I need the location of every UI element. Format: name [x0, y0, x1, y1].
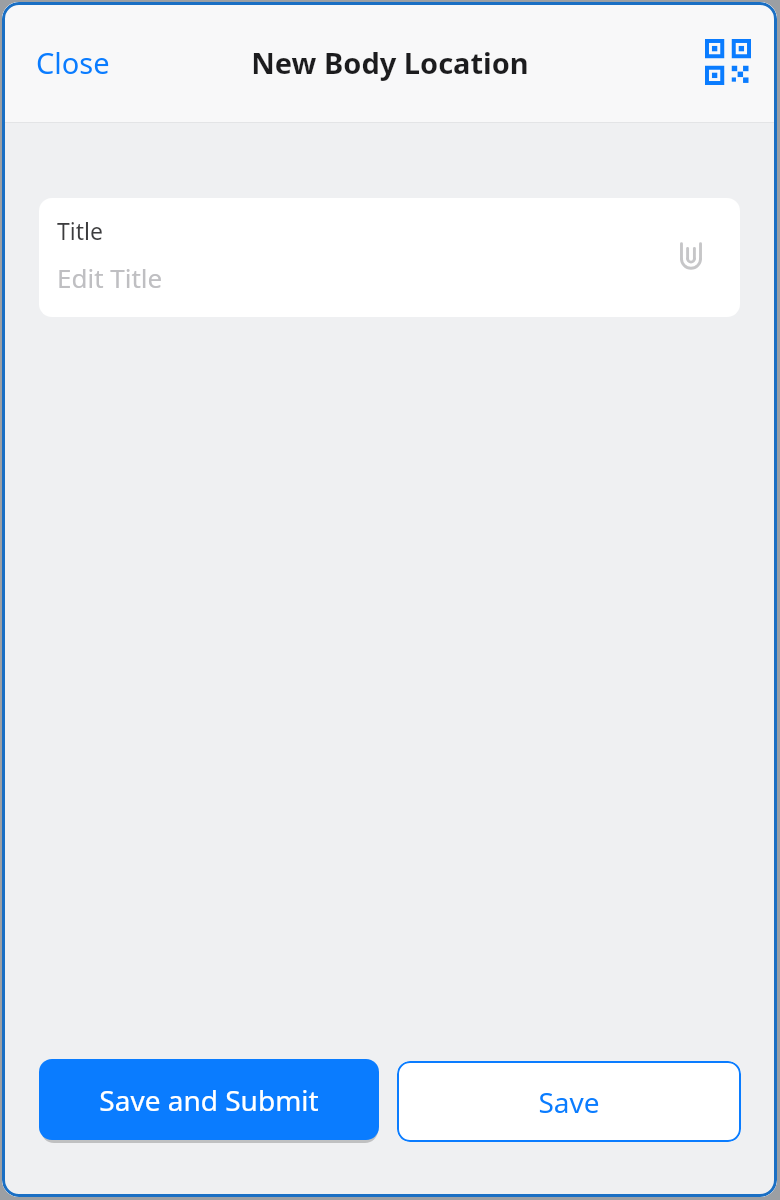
staticText: Title [57, 215, 103, 246]
staticText: Save and Submit [99, 1081, 319, 1119]
button[interactable]: Attach file [666, 233, 716, 283]
button[interactable]: Close [22, 33, 124, 92]
staticText: Save [538, 1083, 600, 1121]
button[interactable]: Save and Submit [39, 1059, 379, 1140]
staticText: Edit Title [57, 260, 163, 295]
button[interactable]: Title [39, 198, 740, 317]
button[interactable]: Scan QR code [701, 35, 755, 89]
staticText: New Body Location [251, 43, 529, 82]
button[interactable]: Save [397, 1061, 741, 1142]
staticText: Close [36, 43, 110, 82]
